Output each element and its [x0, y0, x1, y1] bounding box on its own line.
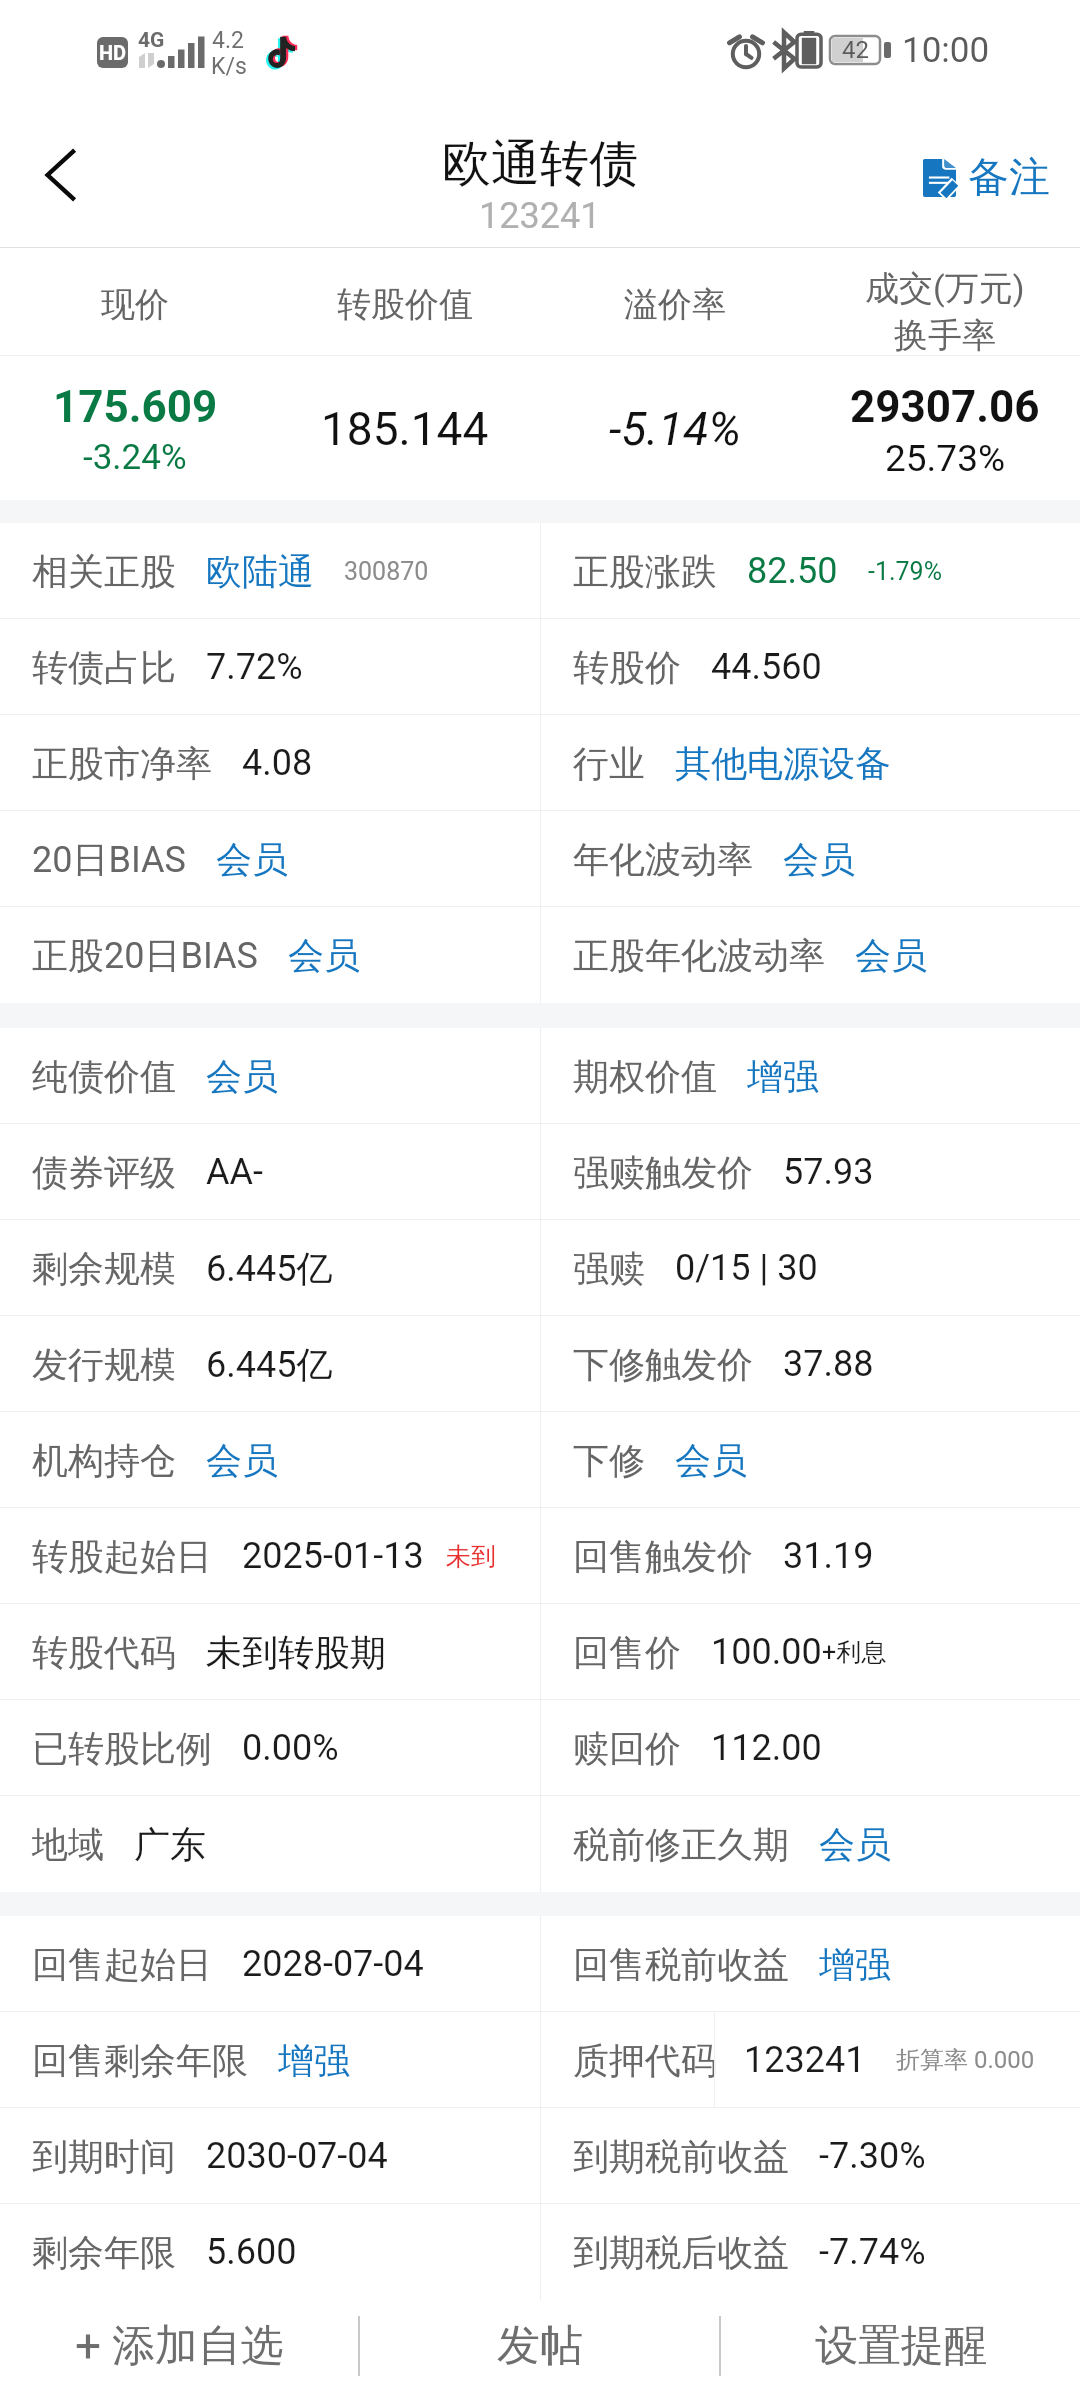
- button[interactable]: 回售起始日: [0, 1916, 540, 2012]
- staticText: 到期时间: [32, 2134, 176, 2179]
- staticText: 回售税前收益: [573, 1942, 789, 1987]
- staticText: -7.74%: [819, 2231, 926, 2273]
- staticText: 机构持仓: [32, 1438, 176, 1483]
- staticText: 10:00: [902, 30, 990, 71]
- staticText: 175.609: [53, 381, 218, 433]
- button[interactable]: 下修: [541, 1412, 1080, 1508]
- button[interactable]: 发帖: [360, 2300, 719, 2400]
- button[interactable]: 到期税后收益: [541, 2204, 1080, 2300]
- staticText: -5.14%: [609, 402, 741, 456]
- staticText: 会员: [819, 1822, 891, 1867]
- button[interactable]: 到期税前收益: [541, 2108, 1080, 2204]
- button[interactable]: 相关正股: [0, 523, 540, 619]
- staticText: 转股价: [573, 645, 681, 690]
- staticText: 会员: [783, 837, 855, 882]
- button[interactable]: 转股代码: [0, 1604, 540, 1700]
- staticText: 123241: [479, 195, 601, 237]
- staticText: 换手率: [894, 314, 996, 357]
- button[interactable]: 纯债价值: [0, 1028, 540, 1124]
- staticText: +利息: [822, 1637, 887, 1668]
- button[interactable]: 质押代码: [541, 2012, 1080, 2108]
- staticText: 其他电源设备: [675, 741, 891, 786]
- button[interactable]: 行业: [541, 715, 1080, 811]
- button[interactable]: 回售触发价: [541, 1508, 1080, 1604]
- button[interactable]: 地域: [0, 1796, 540, 1892]
- button[interactable]: 转债占比: [0, 619, 540, 715]
- button[interactable]: 回售税前收益: [541, 1916, 1080, 2012]
- button[interactable]: 回售剩余年限: [0, 2012, 540, 2108]
- staticText: 会员: [288, 933, 360, 978]
- button[interactable]: Back: [16, 132, 102, 218]
- staticText: 0.00%: [242, 1727, 339, 1769]
- button[interactable]: 机构持仓: [0, 1412, 540, 1508]
- button[interactable]: 强赎触发价: [541, 1124, 1080, 1220]
- staticText: 增强: [819, 1942, 891, 1987]
- staticText: 回售起始日: [32, 1942, 212, 1987]
- staticText: 转股代码: [32, 1630, 176, 1675]
- staticText: 转债占比: [32, 645, 176, 690]
- button[interactable]: 期权价值: [541, 1028, 1080, 1124]
- staticText: 欧陆通: [206, 549, 314, 594]
- staticText: 剩余年限: [32, 2230, 176, 2275]
- button[interactable]: 正股年化波动率: [541, 907, 1080, 1003]
- button[interactable]: 赎回价: [541, 1700, 1080, 1796]
- staticText: 44.560: [711, 646, 822, 688]
- button[interactable]: 正股涨跌: [541, 523, 1080, 619]
- staticText: 正股20日BIAS: [32, 933, 258, 978]
- staticText: 123241: [744, 2039, 866, 2081]
- staticText: 增强: [747, 1054, 819, 1099]
- staticText: 7.72%: [206, 646, 303, 688]
- button[interactable]: 剩余规模: [0, 1220, 540, 1316]
- staticText: 回售价: [573, 1630, 681, 1675]
- staticText: 回售触发价: [573, 1534, 753, 1579]
- button[interactable]: 转股价: [541, 619, 1080, 715]
- button[interactable]: 强赎: [541, 1220, 1080, 1316]
- staticText: 4.08: [242, 742, 313, 784]
- button[interactable]: 已转股比例: [0, 1700, 540, 1796]
- staticText: 到期税前收益: [573, 2134, 789, 2179]
- button[interactable]: 发行规模: [0, 1316, 540, 1412]
- staticText: 发行规模: [32, 1342, 176, 1387]
- staticText: -1.79%: [868, 557, 942, 586]
- staticText: +: [75, 2319, 102, 2373]
- staticText: 强赎触发价: [573, 1150, 753, 1195]
- staticText: 剩余规模: [32, 1246, 176, 1291]
- staticText: 4.2: [212, 27, 244, 54]
- staticText: 到期税后收益: [573, 2230, 789, 2275]
- staticText: 2028-07-04: [242, 1943, 424, 1985]
- button[interactable]: 正股市净率: [0, 715, 540, 811]
- button[interactable]: +: [0, 2300, 358, 2400]
- staticText: 成交(万元): [865, 267, 1025, 310]
- staticText: 0/15 | 30: [675, 1247, 818, 1289]
- staticText: 下修触发价: [573, 1342, 753, 1387]
- staticText: 年化波动率: [573, 837, 753, 882]
- button[interactable]: 设置提醒: [721, 2300, 1080, 2400]
- staticText: K/s: [211, 53, 247, 80]
- button[interactable]: 转股起始日: [0, 1508, 540, 1604]
- button[interactable]: 税前修正久期: [541, 1796, 1080, 1892]
- staticText: 相关正股: [32, 549, 176, 594]
- staticText: 正股年化波动率: [573, 933, 825, 978]
- button[interactable]: 债券评级: [0, 1124, 540, 1220]
- button[interactable]: 剩余年限: [0, 2204, 540, 2300]
- button[interactable]: 备注: [923, 152, 1050, 204]
- staticText: 2025-01-13: [242, 1535, 424, 1577]
- staticText: 已转股比例: [32, 1726, 212, 1771]
- button[interactable]: 正股20日BIAS: [0, 907, 540, 1003]
- button[interactable]: 年化波动率: [541, 811, 1080, 907]
- button[interactable]: 20日BIAS: [0, 811, 540, 907]
- staticText: 增强: [278, 2038, 350, 2083]
- staticText: 转股价值: [337, 283, 473, 326]
- button[interactable]: 下修触发价: [541, 1316, 1080, 1412]
- staticText: 设置提醒: [815, 2319, 987, 2373]
- button[interactable]: 回售价: [541, 1604, 1080, 1700]
- staticText: 现价: [101, 283, 169, 326]
- staticText: 300870: [344, 557, 429, 586]
- staticText: 112.00: [711, 1727, 822, 1769]
- staticText: 5.600: [206, 2231, 297, 2273]
- staticText: 20日BIAS: [32, 837, 186, 882]
- staticText: 期权价值: [573, 1054, 717, 1099]
- staticText: 广东: [134, 1822, 206, 1867]
- button[interactable]: 到期时间: [0, 2108, 540, 2204]
- staticText: 42: [842, 36, 869, 64]
